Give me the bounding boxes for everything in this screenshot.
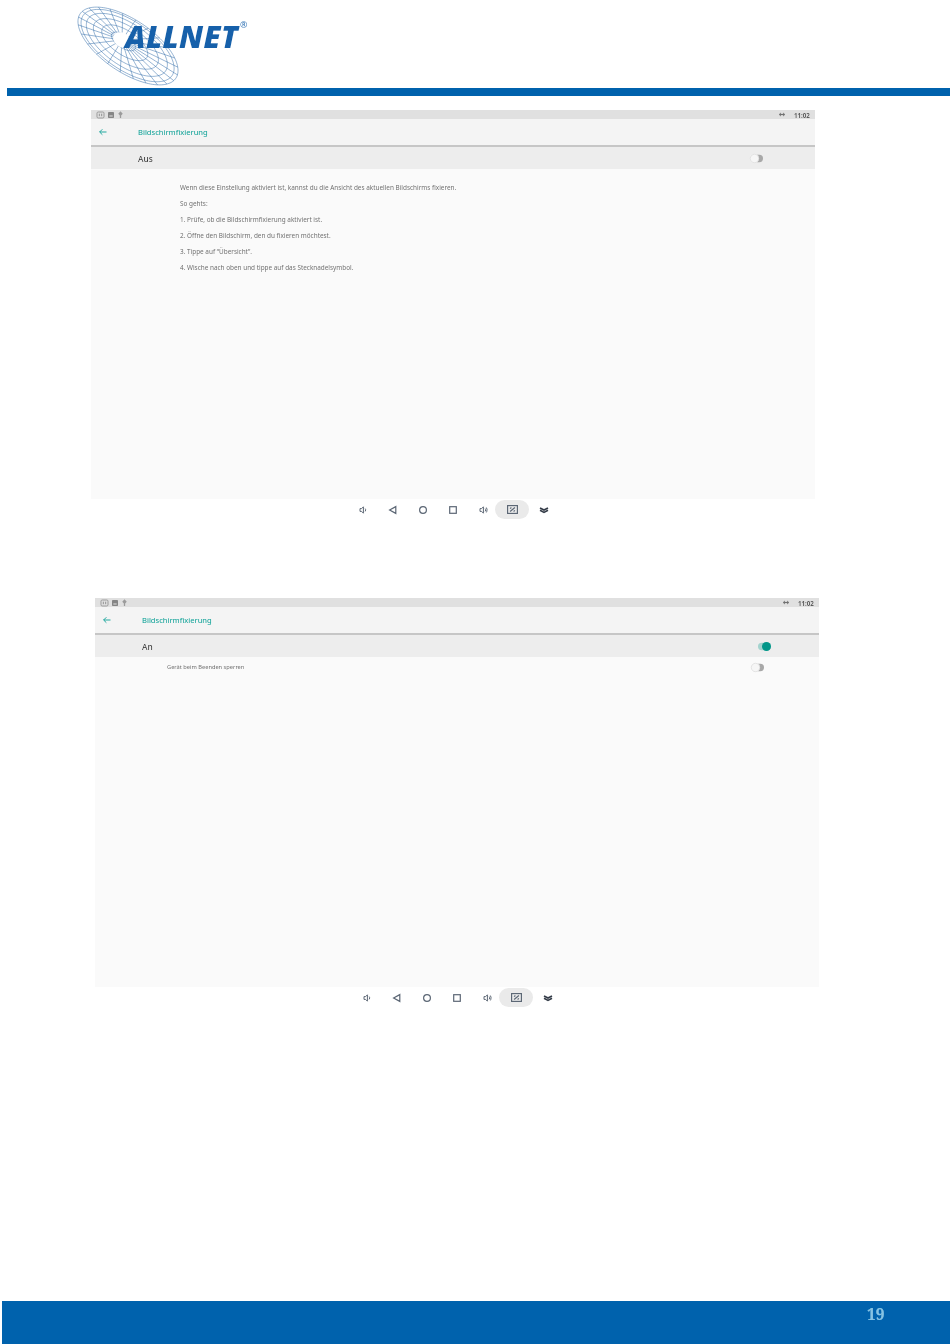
button[interactable]: Screenshot bbox=[495, 500, 529, 519]
staticText: 3. Tippe auf “Übersicht”. bbox=[180, 247, 253, 256]
button[interactable]: Home bbox=[418, 989, 435, 1006]
staticText: ALLNET bbox=[125, 15, 239, 57]
button[interactable]: Gerät beim Beenden sperren bbox=[95, 657, 819, 677]
staticText: Aus bbox=[138, 153, 153, 164]
button[interactable]: Back bbox=[384, 501, 401, 518]
staticText: Wenn diese Einstellung aktiviert ist, ka… bbox=[180, 183, 457, 192]
button[interactable]: Back bbox=[95, 607, 119, 633]
staticText: 2. Öffne den Bildschirm, den du fixieren… bbox=[180, 231, 331, 240]
button[interactable]: Volume up bbox=[478, 989, 495, 1006]
button[interactable]: Volume up bbox=[474, 501, 491, 518]
button[interactable]: Volume down bbox=[354, 501, 371, 518]
staticText: An bbox=[142, 641, 153, 652]
button[interactable]: Toggle bbox=[758, 642, 771, 651]
button[interactable]: Recents bbox=[448, 989, 465, 1006]
staticText: So gehts: bbox=[180, 199, 208, 208]
button[interactable]: Home bbox=[414, 501, 431, 518]
button[interactable]: Collapse bbox=[539, 989, 556, 1006]
staticText: 19 bbox=[867, 1303, 885, 1324]
button[interactable]: Screenshot bbox=[499, 988, 533, 1007]
staticText: 11:02 bbox=[798, 599, 814, 607]
staticText: Gerät beim Beenden sperren bbox=[167, 663, 245, 671]
button[interactable]: Collapse bbox=[535, 501, 552, 518]
button[interactable]: Back bbox=[91, 119, 115, 145]
staticText: 11:02 bbox=[794, 111, 810, 119]
button[interactable]: Toggle bbox=[750, 154, 763, 163]
staticText: Bildschirmfixierung bbox=[142, 615, 212, 625]
button[interactable]: Back bbox=[388, 989, 405, 1006]
button[interactable]: Toggle bbox=[751, 663, 764, 672]
staticText: ® bbox=[240, 18, 248, 30]
staticText: Bildschirmfixierung bbox=[138, 127, 208, 137]
button[interactable]: Recents bbox=[444, 501, 461, 518]
staticText: 1. Prüfe, ob die Bildschirmfixierung akt… bbox=[180, 215, 323, 224]
staticText: 4. Wische nach oben und tippe auf das St… bbox=[180, 263, 354, 272]
button[interactable]: Volume down bbox=[358, 989, 375, 1006]
button[interactable]: An bbox=[95, 635, 819, 657]
button[interactable]: Aus bbox=[91, 147, 815, 169]
